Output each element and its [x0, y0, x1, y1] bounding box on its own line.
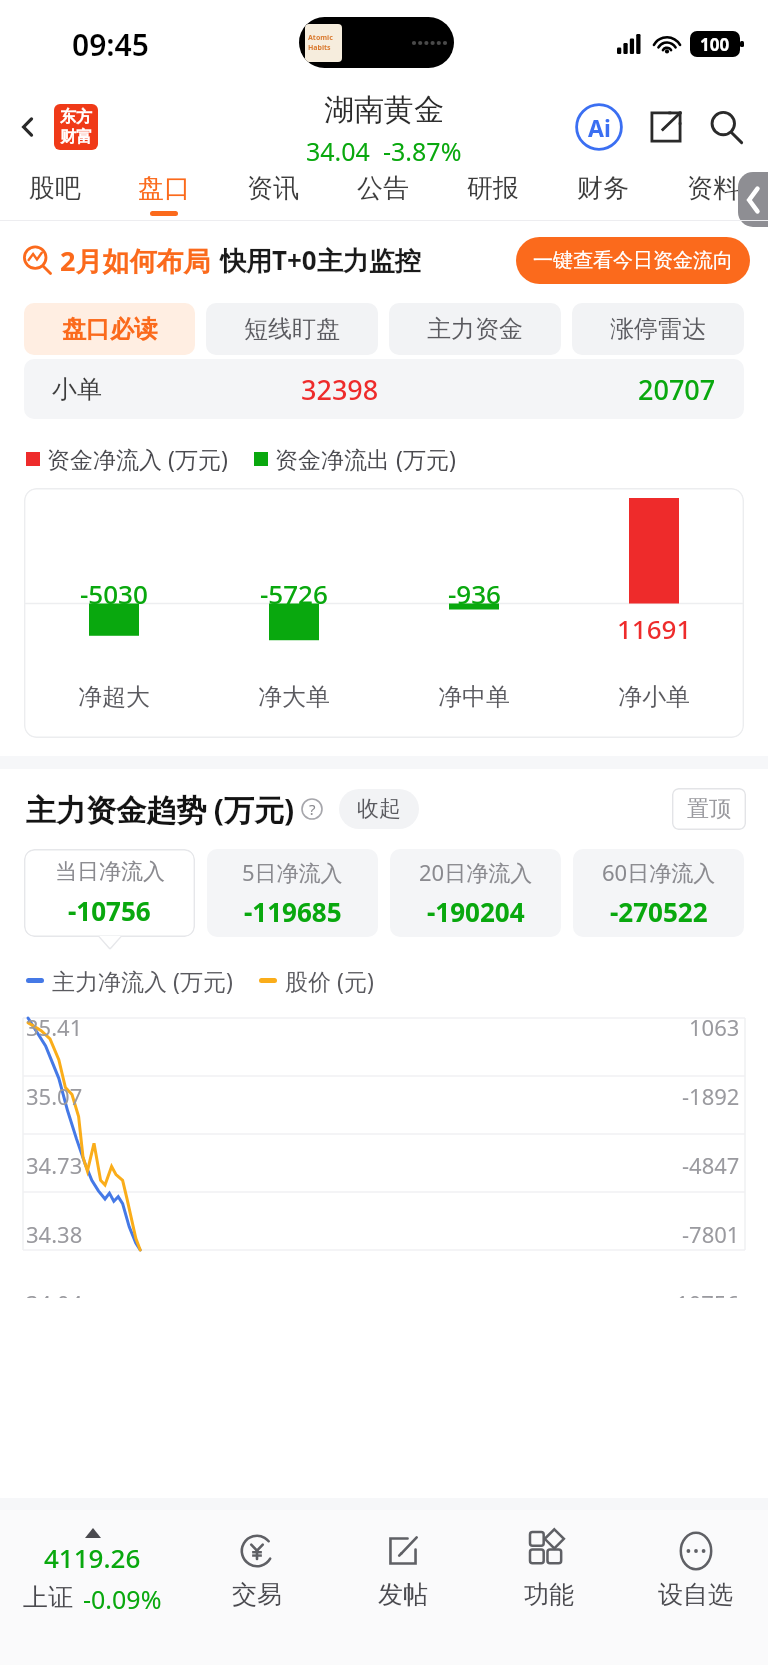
staticText: 股价 (元)	[285, 965, 374, 996]
staticText: -5030	[80, 576, 148, 611]
staticText: 净小单	[618, 682, 690, 712]
staticText: 交易	[232, 1579, 282, 1610]
button[interactable]: 20日净流入	[390, 849, 561, 937]
button[interactable]: Trade	[184, 1510, 330, 1665]
button[interactable]: Back	[6, 105, 50, 149]
staticText: -3.87%	[383, 134, 462, 168]
staticText: 32398	[301, 371, 379, 408]
staticText: -0.09%	[83, 1582, 162, 1616]
staticText: 资料	[687, 172, 739, 205]
staticText: 公告	[357, 172, 409, 205]
button[interactable]: Add to watchlist	[622, 1510, 768, 1665]
button[interactable]: Functions	[476, 1510, 622, 1665]
staticText: 35.07	[26, 1081, 83, 1111]
staticText: 发帖	[378, 1579, 428, 1610]
button[interactable]: Search	[700, 101, 752, 153]
button[interactable]: Post	[330, 1510, 476, 1665]
button[interactable]: 研报	[438, 166, 548, 221]
staticText: 一键查看今日资金流向	[533, 248, 733, 273]
staticText: 功能	[524, 1579, 574, 1610]
button[interactable]: 资料	[658, 166, 768, 221]
button[interactable]: 盘口必读	[24, 303, 195, 355]
staticText: 11691	[617, 611, 692, 646]
staticText: ?	[309, 799, 316, 819]
staticText: -7801	[682, 1219, 740, 1249]
staticText: 09:45	[72, 24, 149, 65]
staticText: 34.38	[26, 1219, 83, 1249]
staticText: -270522	[610, 894, 708, 929]
staticText: 盘口	[138, 172, 190, 205]
staticText: 设自选	[658, 1579, 733, 1610]
staticText: 2月如何布局	[60, 242, 211, 279]
staticText: 34.04	[306, 134, 370, 168]
staticText: 东方	[60, 107, 92, 127]
staticText: 资金净流出 (万元)	[275, 443, 456, 474]
button[interactable]: 小单	[24, 359, 744, 419]
staticText: 主力资金趋势 (万元)	[26, 789, 295, 830]
staticText: -190204	[427, 894, 525, 929]
staticText: 快用T+0主力监控	[220, 242, 421, 278]
button[interactable]: 资讯	[218, 166, 328, 221]
staticText: 4119.26	[44, 1540, 141, 1575]
button[interactable]: 短线盯盘	[206, 303, 378, 355]
staticText: -5726	[260, 576, 328, 611]
staticText: -1892	[682, 1081, 740, 1111]
button[interactable]: 当日净流入	[24, 849, 195, 937]
staticText: -4847	[682, 1150, 740, 1180]
staticText: -10756	[669, 1288, 740, 1298]
staticText: -119685	[244, 894, 342, 929]
button[interactable]: 置顶	[672, 788, 746, 830]
staticText: 资讯	[247, 172, 299, 205]
button[interactable]: 60日净流入	[573, 849, 744, 937]
staticText: 资金净流入 (万元)	[47, 443, 228, 474]
staticText: 股吧	[29, 172, 81, 205]
staticText: -10756	[68, 893, 151, 928]
staticText: 短线盯盘	[244, 314, 340, 344]
staticText: 盘口必读	[62, 314, 158, 344]
staticText: 34.73	[26, 1150, 83, 1180]
staticText: 涨停雷达	[610, 314, 706, 344]
button[interactable]: 财务	[548, 166, 658, 221]
staticText: Atomic	[308, 33, 333, 43]
staticText: 净超大	[78, 682, 150, 712]
staticText: 净中单	[438, 682, 510, 712]
button[interactable]: 盘口	[109, 166, 218, 221]
staticText: 湖南黄金	[324, 91, 444, 129]
button[interactable]: Help	[299, 796, 325, 822]
staticText: 收起	[357, 795, 401, 823]
staticText: 主力净流入 (万元)	[52, 965, 233, 996]
button[interactable]: More tabs	[738, 172, 768, 227]
staticText: 财务	[577, 172, 629, 205]
staticText: 上证	[23, 1582, 73, 1613]
button[interactable]: 4119.26	[0, 1510, 184, 1665]
staticText: 主力资金	[427, 314, 523, 344]
staticText: 60日净流入	[602, 857, 716, 887]
button[interactable]: AI	[572, 100, 626, 154]
staticText: 1063	[689, 1012, 740, 1042]
staticText: Ai	[588, 112, 611, 143]
button[interactable]: Share	[640, 101, 692, 153]
staticText: 5日净流入	[242, 857, 343, 887]
staticText: 20707	[638, 371, 716, 408]
button[interactable]: 涨停雷达	[572, 303, 744, 355]
staticText: 净大单	[258, 682, 330, 712]
staticText: 财富	[60, 127, 92, 147]
button[interactable]: 东方	[54, 104, 98, 150]
staticText: 研报	[467, 172, 519, 205]
staticText: 置顶	[687, 795, 731, 823]
staticText: -936	[448, 576, 501, 611]
staticText: 小单	[52, 374, 102, 405]
staticText: 当日净流入	[55, 858, 165, 886]
button[interactable]: 主力资金	[389, 303, 561, 355]
staticText: Habits	[308, 43, 331, 53]
button[interactable]: 一键查看今日资金流向	[516, 237, 750, 284]
button[interactable]: 5日净流入	[207, 849, 378, 937]
staticText: 20日净流入	[419, 857, 533, 887]
button[interactable]: 收起	[339, 789, 419, 829]
button[interactable]: 股吧	[0, 166, 109, 221]
button[interactable]: 公告	[328, 166, 438, 221]
staticText: 35.41	[26, 1012, 83, 1042]
staticText: 100	[700, 33, 730, 56]
staticText: 34.04	[26, 1288, 83, 1298]
